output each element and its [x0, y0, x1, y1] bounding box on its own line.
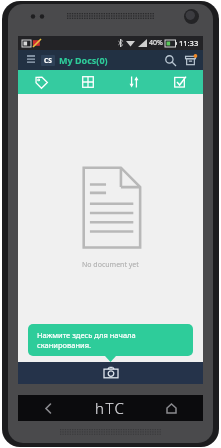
button[interactable]: Tags	[18, 70, 65, 94]
staticText: CS	[44, 56, 52, 65]
staticText: 11:33	[179, 38, 199, 48]
button[interactable]: Back	[38, 398, 58, 418]
button[interactable]: Archive	[180, 50, 200, 70]
button[interactable]: Search	[160, 50, 180, 70]
staticText: Нажмите здесь для начала сканирования.	[37, 330, 136, 350]
button[interactable]: Select	[157, 70, 203, 94]
staticText: 40%	[149, 38, 163, 48]
button[interactable]: Grid	[65, 70, 111, 94]
button[interactable]: Sort	[111, 70, 157, 94]
staticText: No document yet	[82, 260, 139, 270]
button[interactable]: Нажмите здесь для начала сканирования.	[28, 324, 193, 356]
button[interactable]: Home	[161, 398, 181, 418]
staticText: hTC	[95, 398, 126, 418]
button[interactable]: Menu	[21, 50, 41, 70]
button[interactable]: Scan with camera	[18, 362, 203, 384]
staticText: My Docs(0)	[59, 54, 108, 66]
